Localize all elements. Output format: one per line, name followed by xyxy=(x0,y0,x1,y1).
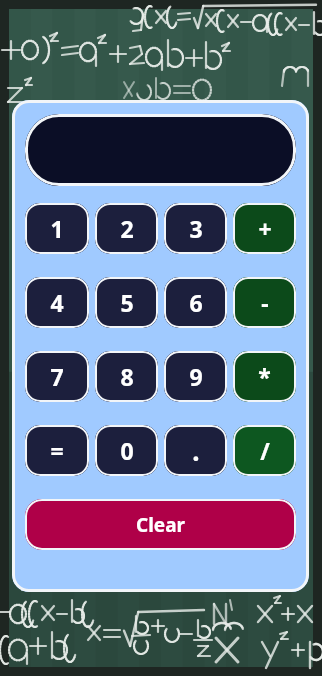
button[interactable]: 6 xyxy=(164,277,227,328)
staticText: - xyxy=(261,287,269,318)
button[interactable]: = xyxy=(25,425,89,476)
staticText: + xyxy=(258,213,272,244)
staticText: . xyxy=(192,433,200,468)
button[interactable] xyxy=(25,114,296,186)
button[interactable]: + xyxy=(233,203,296,254)
button[interactable]: 2 xyxy=(95,203,158,254)
staticText: 9 xyxy=(189,361,203,392)
button[interactable]: 8 xyxy=(95,351,158,402)
staticText: 8 xyxy=(120,361,134,392)
button[interactable]: . xyxy=(164,425,227,476)
button[interactable]: Clear xyxy=(25,499,296,550)
button[interactable]: - xyxy=(233,277,296,328)
staticText: 4 xyxy=(50,287,64,318)
button[interactable]: * xyxy=(233,351,296,402)
button[interactable]: 0 xyxy=(95,425,158,476)
staticText: = xyxy=(50,435,64,466)
staticText: Clear xyxy=(136,512,186,538)
staticText: 1 xyxy=(50,213,64,244)
button[interactable]: 4 xyxy=(25,277,89,328)
staticText: * xyxy=(258,361,271,392)
staticText: 7 xyxy=(50,361,64,392)
staticText: 5 xyxy=(120,287,134,318)
button[interactable]: / xyxy=(233,425,296,476)
staticText: 3 xyxy=(189,213,203,244)
button[interactable]: 5 xyxy=(95,277,158,328)
button[interactable]: 3 xyxy=(164,203,227,254)
button[interactable]: 7 xyxy=(25,351,89,402)
staticText: 2 xyxy=(120,213,134,244)
button[interactable]: 1 xyxy=(25,203,89,254)
staticText: 6 xyxy=(189,287,203,318)
staticText: 0 xyxy=(120,435,134,466)
button[interactable]: 9 xyxy=(164,351,227,402)
staticText: / xyxy=(260,435,270,466)
